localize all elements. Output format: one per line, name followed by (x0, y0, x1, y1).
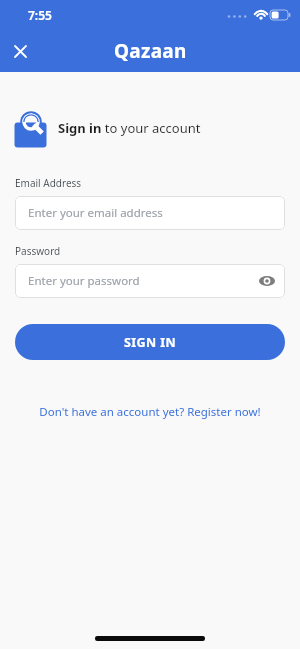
staticText: SIGN IN (124, 334, 177, 351)
staticText: Sign in to your account (58, 119, 201, 137)
staticText: Password (15, 244, 61, 258)
staticText: Enter your email address (28, 205, 163, 221)
button[interactable] (9, 40, 31, 62)
staticText: Email Address (15, 176, 82, 190)
staticText: 7:55 (28, 7, 52, 23)
button[interactable]: Enter your email address (15, 196, 285, 230)
button[interactable]: SIGN IN (15, 324, 285, 360)
button[interactable]: Enter your password (15, 264, 285, 298)
staticText: Don't have an account yet? Register now! (39, 404, 261, 420)
staticText: Qazaan (114, 38, 187, 64)
staticText: Enter your password (28, 273, 140, 289)
button[interactable]: Don't have an account yet? Register now! (0, 404, 300, 420)
